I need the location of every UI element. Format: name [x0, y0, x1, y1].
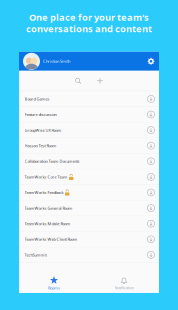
button[interactable]: GroupWise UX Room: [19, 122, 159, 138]
staticText: TechSummit: [24, 252, 46, 257]
staticText: Notification: [114, 285, 133, 290]
staticText: Feature discussion: [24, 112, 56, 117]
staticText: TeamWorks Feedback: [24, 190, 63, 195]
staticText: Board Games: [24, 96, 49, 101]
button[interactable]: Rooms: [19, 274, 89, 293]
staticText: conversations and content: [26, 22, 152, 35]
button[interactable]: TeamWorks Web Client Room: [19, 232, 159, 247]
button[interactable]: TeamWorks Feedback: [19, 185, 159, 200]
staticText: TeamWorks Mobile Room: [24, 221, 70, 226]
button[interactable]: Notification: [89, 274, 159, 293]
staticText: TeamWorks Web Client Room: [24, 237, 77, 242]
staticText: GroupWise UX Room: [24, 127, 61, 133]
button[interactable]: TechSummit: [19, 247, 159, 263]
button[interactable]: Settings: [147, 57, 155, 65]
staticText: Christian Smith: [43, 59, 70, 64]
button[interactable]: Search: [70, 73, 86, 89]
button[interactable]: New room: [92, 73, 108, 89]
button[interactable]: Board Games: [19, 91, 159, 107]
staticText: Collaboration Team Documents: [24, 159, 79, 164]
staticText: Hassan Test Room: [24, 143, 56, 148]
button[interactable]: TeamWorks Mobile Room: [19, 216, 159, 232]
button[interactable]: Collaboration Team Documents: [19, 154, 159, 169]
button[interactable]: Hassan Test Room: [19, 138, 159, 154]
button[interactable]: Feature discussion: [19, 107, 159, 122]
staticText: Rooms: [48, 285, 60, 290]
button[interactable]: TeamWorks Core Team: [19, 169, 159, 185]
staticText: One place for your team's: [29, 11, 149, 23]
staticText: TeamWorks Core Team: [24, 174, 67, 179]
staticText: TeamWorks General Room: [24, 205, 72, 211]
button[interactable]: Profile: [23, 53, 40, 70]
button[interactable]: TeamWorks General Room: [19, 200, 159, 216]
